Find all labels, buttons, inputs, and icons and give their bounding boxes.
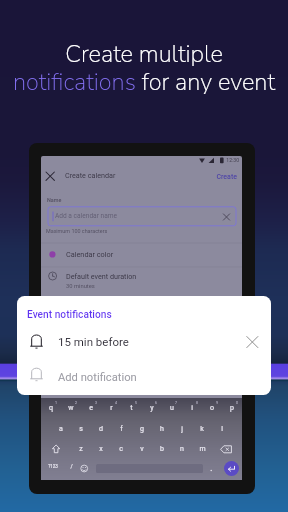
staticText: 0: [236, 401, 238, 405]
button[interactable]: Enter: [224, 461, 239, 476]
staticText: 5: [135, 401, 137, 405]
staticText: Add a calendar name: [55, 212, 118, 220]
staticText: r: [110, 404, 113, 412]
staticText: Maximum 100 characters: [46, 228, 108, 234]
staticText: z: [79, 445, 83, 453]
staticText: 4: [115, 401, 117, 405]
staticText: c: [119, 445, 123, 453]
staticText: i: [191, 404, 193, 412]
staticText: y: [150, 404, 154, 412]
staticText: 6: [155, 401, 157, 405]
staticText: Add notification: [58, 371, 137, 384]
staticText: k: [200, 425, 204, 433]
staticText: e: [89, 404, 93, 412]
staticText: 2: [75, 401, 77, 405]
staticText: 9: [216, 401, 218, 405]
staticText: n: [180, 445, 184, 453]
staticText: w: [68, 404, 74, 412]
staticText: 1: [55, 401, 57, 405]
staticText: x: [99, 445, 103, 453]
staticText: Default event duration: [66, 272, 137, 280]
staticText: Event notifications: [27, 309, 112, 321]
staticText: l: [221, 425, 223, 433]
staticText: 8: [196, 401, 198, 405]
staticText: s: [79, 425, 83, 433]
staticText: 30 minutes: [66, 283, 95, 290]
staticText: b: [160, 445, 164, 453]
staticText: d: [99, 425, 103, 433]
button[interactable]: Remove notification: [241, 326, 265, 360]
staticText: t: [130, 404, 133, 412]
staticText: Calendar color: [66, 250, 114, 259]
staticText: 3: [95, 401, 97, 405]
staticText: 12:30: [226, 157, 239, 163]
staticText: g: [140, 425, 144, 433]
staticText: j: [181, 425, 183, 433]
staticText: 15 min before: [58, 335, 129, 348]
staticText: 7: [175, 401, 177, 405]
staticText: Name: [47, 197, 62, 203]
staticText: a: [59, 425, 63, 433]
staticText: h: [160, 425, 164, 433]
staticText: u: [170, 404, 174, 412]
button[interactable]: [17, 360, 271, 394]
staticText: Create calendar: [65, 171, 116, 179]
button[interactable]: [17, 326, 271, 360]
staticText: q: [49, 404, 53, 412]
staticText: Create multiple notifications for any ev…: [0, 38, 288, 98]
staticText: m: [199, 445, 206, 453]
staticText: o: [210, 404, 214, 412]
staticText: v: [140, 445, 144, 453]
staticText: p: [230, 404, 234, 412]
staticText: Create: [216, 173, 237, 181]
staticText: ?123: [48, 464, 58, 469]
staticText: /: [70, 463, 73, 469]
staticText: f: [120, 425, 123, 433]
